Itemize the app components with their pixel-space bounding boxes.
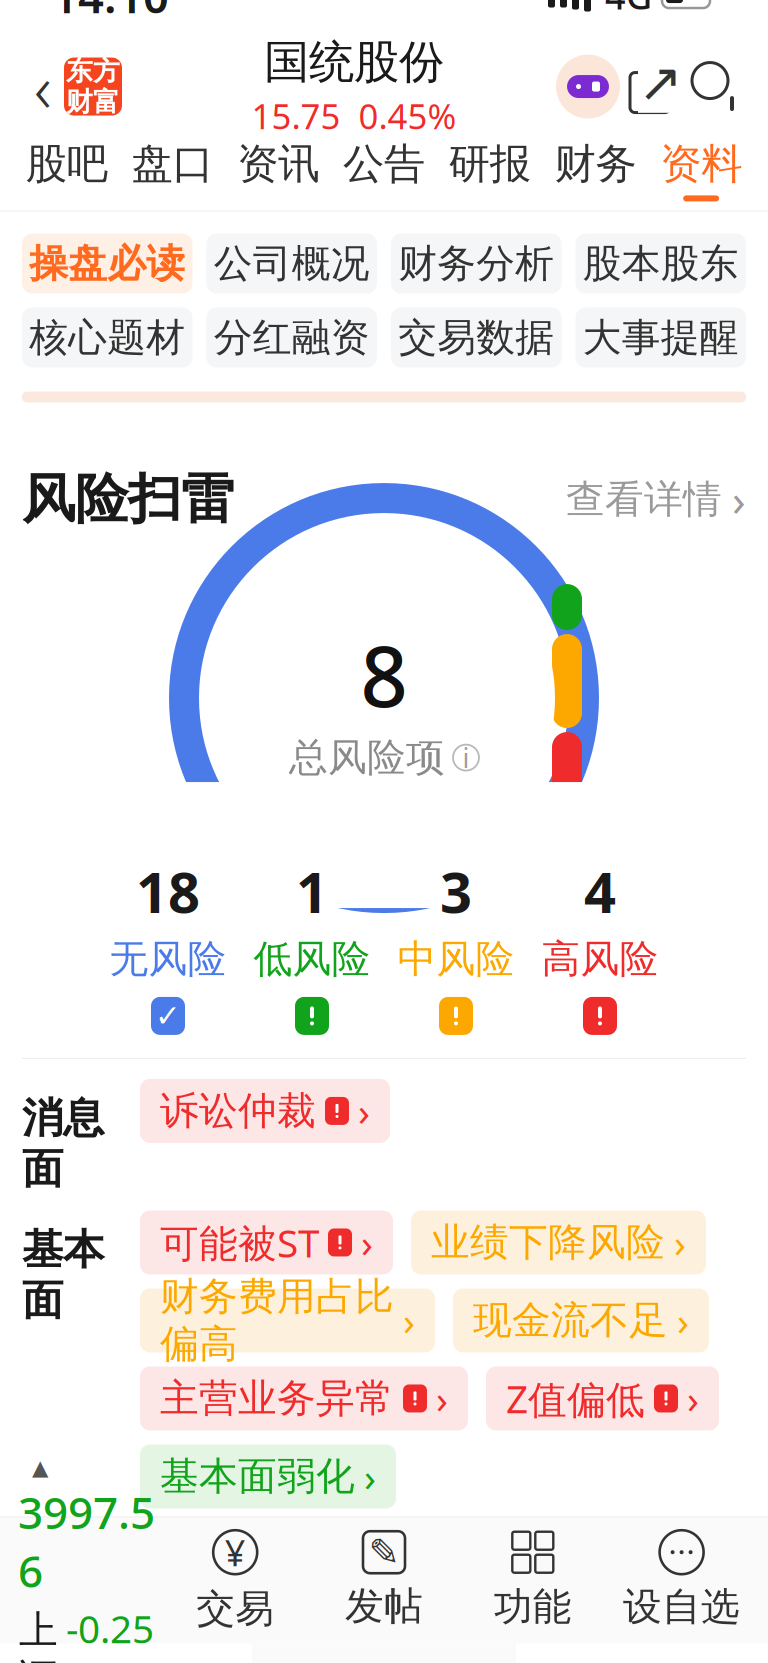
staticText: 风险扫雷 <box>22 466 234 532</box>
button[interactable]: 操盘必读 <box>22 233 192 293</box>
staticText: 东方 <box>66 55 120 88</box>
button[interactable]: 东方财富 <box>64 57 122 115</box>
staticText: 财富 <box>66 85 120 118</box>
staticText: 主营业务异常 <box>160 1375 394 1422</box>
button[interactable]: 搜索 <box>686 55 746 117</box>
staticText: 现金流不足 <box>473 1297 668 1344</box>
staticText: › <box>403 1295 415 1346</box>
staticText: Z值偏低 <box>506 1373 645 1424</box>
button[interactable]: 股本股东 <box>575 233 746 293</box>
button[interactable]: 主营业务异常 <box>140 1366 468 1430</box>
button[interactable]: 股吧 <box>14 131 120 210</box>
staticText: 分红融资 <box>214 314 370 361</box>
staticText: 股吧 <box>26 139 108 189</box>
button[interactable]: 交易数据 <box>391 307 561 367</box>
staticText: 15.75 <box>251 93 340 139</box>
staticText: 无风险 <box>109 935 226 983</box>
button[interactable]: 功能 <box>458 1517 607 1643</box>
staticText: 交易数据 <box>398 314 554 361</box>
button[interactable]: 核心题材 <box>22 307 192 367</box>
button[interactable]: 大事提醒 <box>575 307 746 367</box>
button[interactable]: 研报 <box>437 131 543 210</box>
staticText: 可能被ST <box>160 1217 319 1268</box>
staticText: ‹ <box>34 42 52 131</box>
staticText: 股本股东 <box>583 240 739 287</box>
button[interactable]: 公司概况 <box>206 233 377 293</box>
staticText: 盘口 <box>132 139 214 189</box>
staticText: 财务分析 <box>398 240 554 287</box>
button[interactable]: 资料 <box>648 131 754 210</box>
staticText: 高风险 <box>541 935 658 983</box>
button[interactable]: 诉讼仲裁 <box>140 1079 390 1143</box>
staticText: 基本面 <box>22 1224 104 1326</box>
button[interactable]: 分红融资 <box>206 307 377 367</box>
staticText: -0.25% <box>66 1603 154 1663</box>
staticText: 8 <box>360 620 407 730</box>
staticText: i <box>462 740 469 775</box>
button[interactable]: 业绩下降风险 <box>411 1210 706 1274</box>
staticText: ↗ <box>638 52 683 113</box>
staticText: 0.45% <box>358 93 456 139</box>
button[interactable]: 设自选 <box>607 1517 756 1643</box>
staticText: 操盘必读 <box>29 240 185 287</box>
staticText: 公告 <box>343 139 425 189</box>
staticText: › <box>677 1295 689 1346</box>
staticText: › <box>436 1373 448 1424</box>
staticText: 资料 <box>660 139 742 189</box>
staticText: 中风险 <box>397 935 514 983</box>
button[interactable]: 财务费用占比偏高 <box>140 1288 435 1352</box>
staticText: 发帖 <box>345 1582 423 1630</box>
staticText: 3997.56 <box>18 1483 155 1600</box>
staticText: 业绩下降风险 <box>431 1219 665 1266</box>
staticText: 交易 <box>196 1585 274 1633</box>
button[interactable]: 公告 <box>331 131 437 210</box>
button[interactable]: 可能被ST <box>140 1210 393 1274</box>
button[interactable]: Z值偏低 <box>486 1366 719 1430</box>
button[interactable]: 盘口 <box>120 131 225 210</box>
staticText: 4 <box>584 854 616 928</box>
staticText: 设自选 <box>623 1583 740 1631</box>
staticText: 3 <box>440 854 472 928</box>
staticText: ▲ <box>32 1456 48 1480</box>
staticText: 国统股份 <box>264 34 444 90</box>
button[interactable]: 现金流不足 <box>453 1288 709 1352</box>
button[interactable]: ✎ <box>310 1517 458 1643</box>
staticText: 公司概况 <box>214 240 370 287</box>
button[interactable]: ¥ <box>161 1517 310 1643</box>
staticText: 功能 <box>494 1583 572 1631</box>
staticText: 消息面 <box>22 1093 104 1194</box>
staticText: 大事提醒 <box>583 314 739 361</box>
button[interactable]: 财务分析 <box>391 233 561 293</box>
staticText: 1 <box>296 854 328 928</box>
staticText: 18 <box>136 854 200 928</box>
staticText: 基本面弱化 <box>160 1453 355 1500</box>
staticText: ✓ <box>155 998 181 1033</box>
staticText: 核心题材 <box>29 314 185 361</box>
staticText: 诉讼仲裁 <box>160 1087 316 1135</box>
staticText: ¥ <box>225 1528 246 1576</box>
staticText: › <box>361 1217 373 1268</box>
staticText: 低风险 <box>253 935 370 983</box>
staticText: ✎ <box>368 1531 399 1573</box>
staticText: 研报 <box>449 139 531 189</box>
staticText: 上证 <box>19 1606 58 1663</box>
staticText: › <box>364 1451 376 1502</box>
staticText: › <box>674 1217 686 1268</box>
staticText: › <box>358 1085 370 1136</box>
staticText: 财务 <box>554 139 636 189</box>
staticText: 查看详情 <box>566 476 722 523</box>
staticText: › <box>732 470 746 528</box>
staticText: 财务费用占比偏高 <box>160 1273 394 1368</box>
staticText: 资讯 <box>237 139 319 189</box>
button[interactable]: 资讯 <box>225 131 331 210</box>
button[interactable]: 财务 <box>543 131 648 210</box>
button[interactable]: 查看详情 <box>566 470 746 528</box>
staticText: › <box>687 1373 699 1424</box>
button[interactable]: 上证指数 <box>12 1517 161 1643</box>
button[interactable]: 基本面弱化 <box>140 1444 396 1508</box>
button[interactable]: 返回 <box>22 51 64 121</box>
staticText: 总风险项 <box>289 734 445 781</box>
staticText: 4G <box>605 0 652 19</box>
button[interactable]: AI 助手 <box>552 50 624 122</box>
button[interactable]: 分享 <box>624 49 686 123</box>
